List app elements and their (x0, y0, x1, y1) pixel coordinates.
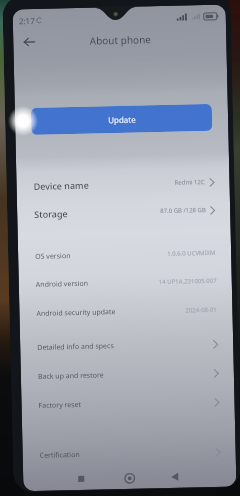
button[interactable]: Android version (18, 268, 232, 297)
staticText: 1.0.6.0 UCVMIXM (167, 249, 216, 258)
button[interactable]: Android security update (19, 297, 233, 326)
staticText: Storage (34, 207, 68, 220)
staticText: Detailed info and specs (37, 341, 114, 353)
button[interactable]: Back (164, 467, 184, 487)
button[interactable]: Home (119, 468, 139, 488)
staticText: 2:17 (19, 15, 35, 26)
staticText: OS version (35, 251, 71, 262)
staticText: Certification (40, 450, 80, 461)
staticText: 14 UP1A.231005.007 (159, 277, 217, 286)
staticText: Device name (33, 179, 90, 192)
button[interactable]: Back up and restore (21, 360, 234, 389)
button[interactable]: Factory reset (21, 389, 235, 418)
button[interactable]: Device name (16, 169, 230, 198)
button[interactable]: Back (18, 31, 41, 53)
staticText: Factory reset (38, 400, 82, 411)
staticText: Update (108, 114, 136, 125)
button[interactable]: Update (31, 104, 212, 135)
button[interactable]: OS version (18, 240, 231, 269)
button[interactable]: Storage (17, 197, 230, 226)
staticText: Android version (36, 279, 89, 290)
staticText: Android security update (36, 307, 116, 319)
staticText: About phone (89, 32, 151, 48)
button[interactable]: Detailed info and specs (20, 331, 233, 360)
button[interactable]: Recents (71, 469, 91, 489)
staticText: Redmi 12C (174, 178, 206, 187)
button[interactable]: Certification (22, 439, 236, 468)
staticText: Back up and restore (38, 370, 104, 382)
staticText: 2024-08-01 (185, 306, 217, 314)
staticText: 87.0 GB /128 GB (160, 206, 206, 215)
